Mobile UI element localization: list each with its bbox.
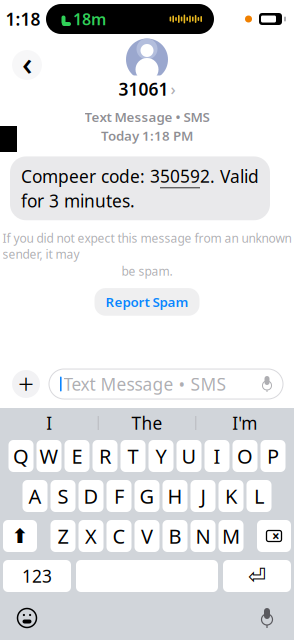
button[interactable]: Text Message • SMS [49,369,283,399]
button[interactable]: W [36,440,61,472]
button[interactable]: N [190,520,215,552]
staticText: I [46,411,52,434]
button[interactable]: P [260,440,285,472]
staticText: T [127,443,138,469]
button[interactable]: A [22,480,47,512]
staticText: L [254,483,264,509]
button[interactable]: E [64,440,89,472]
button[interactable]: M [218,520,243,552]
staticText: × [272,527,280,545]
staticText: Report Spam [105,293,188,311]
staticText: X [85,523,97,549]
button[interactable]: S [50,480,75,512]
staticText: › [170,78,175,100]
staticText: V [141,523,153,549]
button[interactable]: I'm [196,408,293,438]
staticText: Z [57,523,68,549]
button[interactable]: V [134,520,159,552]
button[interactable]: Add attachment [11,369,41,399]
staticText: I [213,443,220,469]
staticText: 18m [73,8,106,30]
staticText: S [57,483,68,509]
button[interactable]: F [106,480,131,512]
staticText: ⏎ [248,564,266,588]
button[interactable]: U [176,440,201,472]
staticText: 350592 [150,164,210,187]
staticText: 123 [22,564,52,587]
button[interactable]: Back [10,48,44,82]
staticText: C [112,523,125,549]
staticText: W [39,443,58,469]
staticText: N [195,523,210,549]
button[interactable]: I [1,408,98,438]
button[interactable]: L [246,480,271,512]
staticText: H [167,483,182,509]
staticText: F [114,483,124,509]
staticText: for 3 minutes. [21,189,135,212]
staticText: be spam. [121,263,172,279]
button[interactable]: B [162,520,187,552]
button[interactable]: Q [8,440,33,472]
button[interactable]: Y [148,440,173,472]
button[interactable]: Emoji [12,603,42,633]
staticText: If you did not expect this message from … [2,230,291,262]
staticText: R [99,443,111,469]
staticText: B [168,523,181,549]
button[interactable]: T [120,440,145,472]
staticText: O [237,443,253,469]
button[interactable]: J [190,480,215,512]
button[interactable]: G [134,480,159,512]
button[interactable]: Z [50,520,75,552]
staticText: ⬆ [11,525,28,547]
button[interactable]: C [106,520,131,552]
button[interactable]: K [218,480,243,512]
button[interactable]: Delete [257,520,291,552]
staticText: . Valid [210,165,259,188]
staticText: E [71,443,82,469]
button[interactable]: The [98,408,195,438]
staticText: + [18,364,34,402]
staticText: J [200,483,205,509]
button[interactable]: O [232,440,257,472]
staticText: Q [13,443,29,469]
staticText: The [131,411,162,434]
staticText: Text Message • SMS [84,108,209,126]
staticText: G [139,483,154,509]
staticText: Today 1:18 PM [101,127,193,144]
staticText: U [181,443,196,469]
button[interactable]: Return [223,560,291,592]
staticText: Text Message • SMS [64,372,227,395]
staticText: I'm [232,411,257,434]
button[interactable]: Dictation [252,603,282,633]
button[interactable]: X [78,520,103,552]
button[interactable]: Report Spam [94,288,199,316]
button[interactable]: 123 [3,560,71,592]
staticText: 31061 [118,77,168,100]
staticText: 1:18 [5,7,40,30]
staticText: M [222,523,240,549]
staticText: ‹ [22,42,32,84]
staticText: A [28,483,41,509]
staticText: Y [155,443,166,469]
button[interactable]: D [78,480,103,512]
staticText: D [83,483,98,509]
staticText: K [225,483,237,509]
button[interactable]: Shift [3,520,37,552]
button[interactable]: R [92,440,117,472]
button[interactable]: H [162,480,187,512]
staticText: P [267,443,279,469]
button[interactable]: I [204,440,229,472]
staticText: Compeer code: [21,165,150,188]
